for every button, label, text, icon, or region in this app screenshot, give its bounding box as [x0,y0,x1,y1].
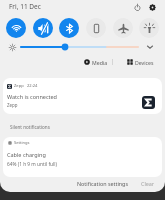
staticText: Clear [141,180,155,187]
button[interactable]: Expand [144,41,155,52]
staticText: Zepp [7,102,18,108]
button[interactable]: Brightness [18,41,142,53]
button[interactable]: Clear [139,180,157,187]
staticText: Notification settings [77,180,129,187]
button[interactable]: Airplane mode [113,18,133,38]
button[interactable]: Bluetooth [59,18,79,38]
staticText: Cable charging [7,151,46,158]
staticText: Devices [135,59,154,66]
button[interactable]: Notification settings [75,180,131,187]
button[interactable]: Zepp [3,78,162,114]
staticText: 22:24 [27,83,38,89]
button[interactable]: Settings [3,137,162,177]
button[interactable]: Wi-Fi [6,18,26,38]
staticText: 64% (1 h 9 m until full) [7,161,57,168]
staticText: Watch is connected [7,93,58,100]
button[interactable]: Power [131,1,143,13]
button[interactable]: Flashlight [139,18,159,38]
staticText: Fri, 11 Dec [9,2,41,11]
button[interactable]: Devices [127,55,154,69]
button[interactable]: Sound off [33,18,53,38]
staticText: Media [92,59,108,66]
button[interactable]: Auto rotate [86,18,106,38]
button[interactable]: Settings [146,1,158,13]
button[interactable]: Media [84,55,108,69]
staticText: Silent notifications [10,124,50,130]
staticText: Zepp [14,83,24,89]
staticText: Settings [14,140,30,146]
